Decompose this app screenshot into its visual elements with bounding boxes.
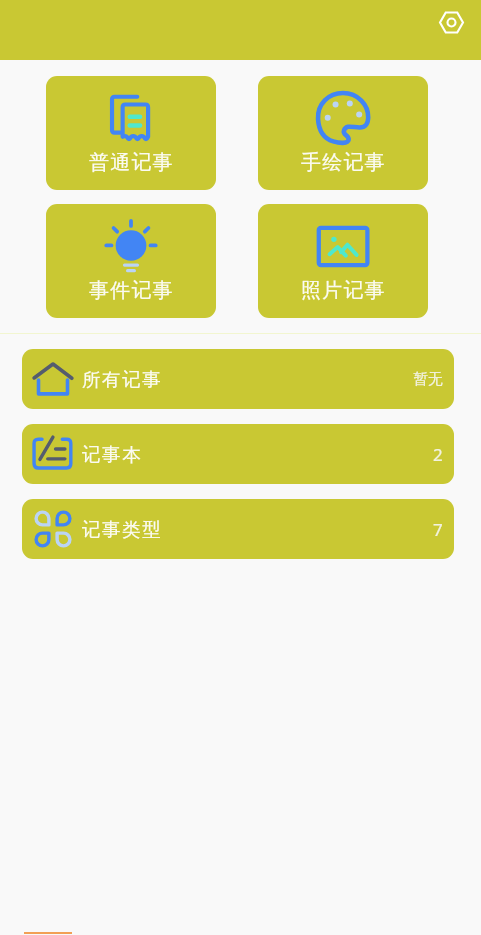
staticText: 事件记事 [89, 278, 174, 303]
button[interactable]: 手绘记事 [258, 76, 428, 190]
staticText: 所有记事 [82, 368, 163, 391]
staticText: 7 [433, 518, 443, 541]
button[interactable]: 照片记事 [258, 204, 428, 318]
button[interactable]: 事件记事 [46, 204, 216, 318]
button[interactable]: Settings [430, 1, 472, 43]
staticText: 暂无 [413, 370, 443, 389]
staticText: 手绘记事 [301, 150, 386, 175]
button[interactable]: 所有记事 [22, 349, 454, 409]
staticText: 记事本 [82, 443, 143, 466]
button[interactable]: 记事本 [22, 424, 454, 484]
staticText: 普通记事 [89, 150, 174, 175]
staticText: 2 [433, 443, 443, 466]
button[interactable]: 记事类型 [22, 499, 454, 559]
staticText: 记事类型 [82, 518, 163, 541]
staticText: 照片记事 [301, 278, 386, 303]
button[interactable]: 普通记事 [46, 76, 216, 190]
